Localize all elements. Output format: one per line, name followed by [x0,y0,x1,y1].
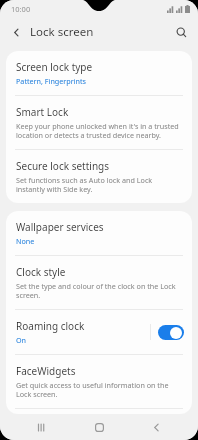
button[interactable]: Home [84,414,114,440]
staticText: Pattern, Fingerprints [16,76,87,86]
staticText: Screen lock type [16,60,93,74]
staticText: Roaming clock [16,319,85,333]
staticText: On [16,335,27,345]
staticText: Smart Lock [16,105,69,119]
button[interactable]: Back [4,20,28,44]
button[interactable]: Wallpaper services [6,211,192,255]
button[interactable]: Roaming clock [6,310,192,354]
button[interactable]: Clock style [6,256,192,309]
staticText: Keep your phone unlocked when it's in a … [16,121,182,140]
staticText: Set functions such as Auto lock and Lock… [16,175,182,194]
staticText: 10:00 [11,4,31,14]
staticText: Set the type and colour of the clock on … [16,281,182,300]
staticText: Wallpaper services [16,220,104,234]
button[interactable]: Secure lock settings [6,150,192,203]
staticText: Clock style [16,265,66,279]
button[interactable]: Back [141,414,171,440]
staticText: Lock screen [30,24,94,40]
button[interactable]: Roaming clock toggle [158,325,184,340]
button[interactable]: Smart Lock [6,96,192,149]
button[interactable]: Recents [27,414,57,440]
staticText: None [16,236,35,246]
staticText: FaceWidgets [16,364,76,378]
staticText: Secure lock settings [16,159,109,173]
button[interactable]: Screen lock type [6,51,192,95]
button[interactable]: Search [169,20,193,44]
staticText: Get quick access to useful information o… [16,380,182,399]
button[interactable]: FaceWidgets [6,355,192,408]
